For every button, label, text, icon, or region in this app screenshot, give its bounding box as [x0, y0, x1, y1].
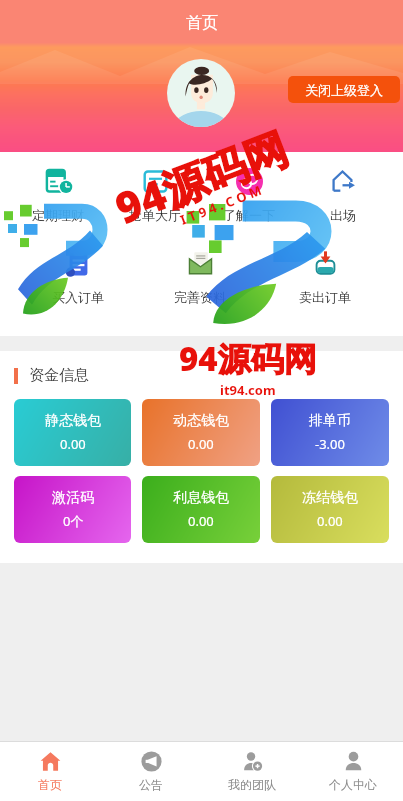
- button[interactable]: 静态钱包: [14, 399, 131, 466]
- button[interactable]: 出场: [300, 168, 384, 234]
- button[interactable]: 我的团队: [201, 742, 302, 801]
- staticText: 激活码: [52, 489, 94, 507]
- button[interactable]: 公告: [100, 742, 201, 801]
- staticText: 我的团队: [228, 777, 276, 792]
- staticText: 完善资料: [174, 289, 226, 305]
- staticText: 首页: [186, 13, 218, 33]
- button[interactable]: 定期理财: [16, 168, 100, 234]
- button[interactable]: 卖出订单: [283, 250, 367, 316]
- staticText: 静态钱包: [45, 412, 101, 430]
- button[interactable]: 了解一下: [207, 168, 291, 234]
- staticText: 94源码网: [107, 118, 296, 237]
- staticText: 出场: [330, 207, 356, 223]
- staticText: 卖出订单: [299, 289, 351, 305]
- staticText: 资金信息: [29, 366, 89, 385]
- staticText: I T 9 4 . C O M: [178, 181, 264, 229]
- button[interactable]: 首页: [0, 742, 100, 801]
- button[interactable]: 抢单大厅: [113, 168, 197, 234]
- staticText: 定期理财: [32, 207, 84, 223]
- staticText: 首页: [38, 777, 62, 792]
- staticText: 动态钱包: [173, 412, 229, 430]
- staticText: -3.00: [315, 435, 345, 453]
- button[interactable]: 个人中心: [302, 742, 403, 801]
- button[interactable]: 动态钱包: [142, 399, 260, 466]
- staticText: 关闭上级登入: [305, 82, 383, 98]
- button[interactable]: 利息钱包: [142, 476, 260, 543]
- staticText: 冻结钱包: [302, 489, 358, 507]
- button[interactable]: 用户头像: [167, 59, 235, 127]
- button[interactable]: 完善资料: [158, 250, 242, 316]
- staticText: 0.00: [188, 435, 214, 453]
- staticText: 0.00: [188, 512, 214, 530]
- staticText: 了解一下: [223, 207, 275, 223]
- staticText: 94源码网: [179, 336, 317, 381]
- staticText: 个人中心: [329, 777, 377, 792]
- staticText: 0.00: [60, 435, 86, 453]
- staticText: 0个: [63, 512, 84, 530]
- button[interactable]: 排单币: [271, 399, 389, 466]
- button[interactable]: 冻结钱包: [271, 476, 389, 543]
- staticText: it94.com: [220, 381, 276, 399]
- staticText: 公告: [139, 777, 163, 792]
- staticText: 利息钱包: [173, 489, 229, 507]
- button[interactable]: 关闭上级登入: [288, 76, 400, 103]
- button[interactable]: 激活码: [14, 476, 131, 543]
- staticText: 买入订单: [52, 289, 104, 305]
- staticText: 排单币: [309, 412, 351, 430]
- button[interactable]: 买入订单: [36, 250, 120, 316]
- staticText: 0.00: [317, 512, 343, 530]
- staticText: 抢单大厅: [129, 207, 181, 223]
